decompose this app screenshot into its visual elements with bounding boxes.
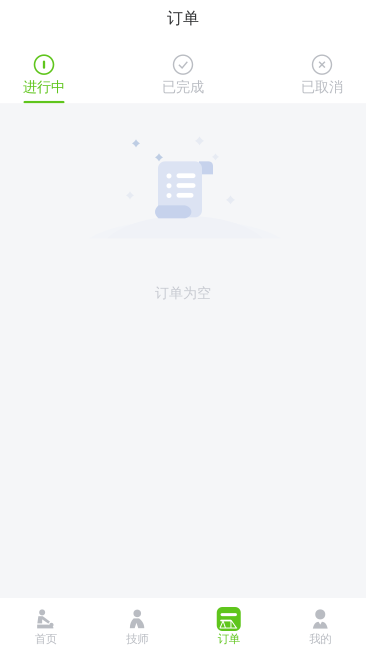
button[interactable]: 已取消 <box>280 55 364 103</box>
button[interactable]: 订单 <box>183 598 274 650</box>
staticText: 我的 <box>309 632 331 646</box>
staticText: 已取消 <box>301 78 343 96</box>
staticText: 订单 <box>167 8 199 28</box>
staticText: 进行中 <box>23 78 65 96</box>
staticText: 技师 <box>126 632 148 646</box>
button[interactable]: 技师 <box>91 598 183 650</box>
staticText: 首页 <box>35 632 57 646</box>
button[interactable]: 已完成 <box>141 55 225 103</box>
button[interactable]: 我的 <box>274 598 366 650</box>
button[interactable]: 首页 <box>0 598 91 650</box>
staticText: 订单为空 <box>155 284 211 302</box>
staticText: 订单 <box>218 632 240 646</box>
button[interactable]: 进行中 <box>2 55 86 103</box>
staticText: 已完成 <box>162 78 204 96</box>
